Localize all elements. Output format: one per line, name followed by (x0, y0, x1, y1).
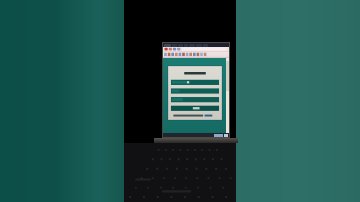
button[interactable]: Sign up (168, 100, 216, 103)
button[interactable]: Email field (168, 86, 216, 89)
button[interactable]: Password field (168, 93, 216, 96)
button[interactable]: Full name field (168, 79, 216, 82)
